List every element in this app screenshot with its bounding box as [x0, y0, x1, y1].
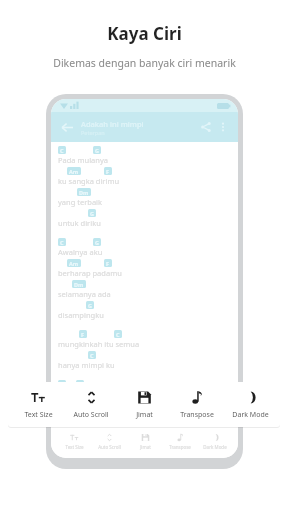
staticText: Text Size — [24, 410, 53, 420]
staticText: Transpose — [180, 410, 214, 420]
staticText: Auto Scroll — [73, 410, 109, 420]
staticText: C — [60, 147, 64, 154]
staticText: Am — [69, 168, 79, 175]
staticText: Dm — [79, 189, 89, 196]
button[interactable]: Auto Scroll — [65, 382, 117, 427]
staticText: G — [78, 381, 82, 388]
button[interactable]: Dark Mode — [198, 433, 232, 450]
staticText: Dikemas dengan banyak ciri menarik — [53, 56, 236, 70]
button[interactable]: Back — [58, 118, 76, 136]
staticText: Pada mulanya — [58, 155, 108, 165]
button[interactable]: More options — [215, 119, 231, 135]
staticText: G — [95, 147, 99, 154]
staticText: Am — [69, 260, 79, 267]
staticText: Transpose — [169, 444, 191, 450]
staticText: C — [116, 331, 120, 338]
staticText: Kaya Ciri — [107, 22, 182, 45]
staticText: ku sangka dirimu — [58, 176, 120, 186]
staticText: Jimat — [136, 410, 153, 420]
staticText: yang terbaik — [58, 197, 103, 207]
button[interactable]: Dark Mode — [224, 382, 276, 427]
staticText: Text Size — [65, 444, 84, 450]
staticText: berharap padamu — [58, 268, 122, 278]
button[interactable]: Text Size — [12, 382, 64, 427]
staticText: Auto Scroll — [98, 444, 121, 450]
staticText: G — [90, 210, 94, 217]
staticText: G — [88, 302, 92, 309]
button[interactable]: Jimat — [128, 433, 162, 450]
staticText: Jimat — [140, 444, 151, 450]
button[interactable]: Share — [197, 118, 215, 136]
staticText: selamanya ada — [58, 289, 111, 299]
staticText: F — [106, 260, 110, 267]
staticText: untuk diriku — [58, 218, 101, 228]
staticText: F — [81, 331, 85, 338]
staticText: Dark Mode — [203, 444, 227, 450]
button[interactable]: Transpose — [163, 433, 197, 450]
staticText: C — [60, 239, 64, 246]
button[interactable]: Transpose — [171, 382, 223, 427]
staticText: disampingku — [58, 310, 104, 320]
button[interactable]: Auto Scroll — [92, 433, 126, 450]
staticText: hanya mimpi ku — [58, 360, 115, 370]
staticText: G — [95, 239, 99, 246]
staticText: Awalnya aku — [58, 247, 103, 257]
staticText: F — [60, 381, 64, 388]
staticText: F — [106, 168, 110, 175]
staticText: C — [90, 352, 94, 359]
staticText: Adakah ini mimpi — [81, 119, 144, 129]
button[interactable]: Text Size — [57, 433, 91, 450]
staticText: mungkinkah itu semua — [58, 339, 140, 349]
staticText: Dm — [74, 281, 84, 288]
staticText: Dark Mode — [232, 410, 269, 420]
staticText: Peterpan — [81, 129, 105, 136]
button[interactable]: Jimat — [118, 382, 170, 427]
